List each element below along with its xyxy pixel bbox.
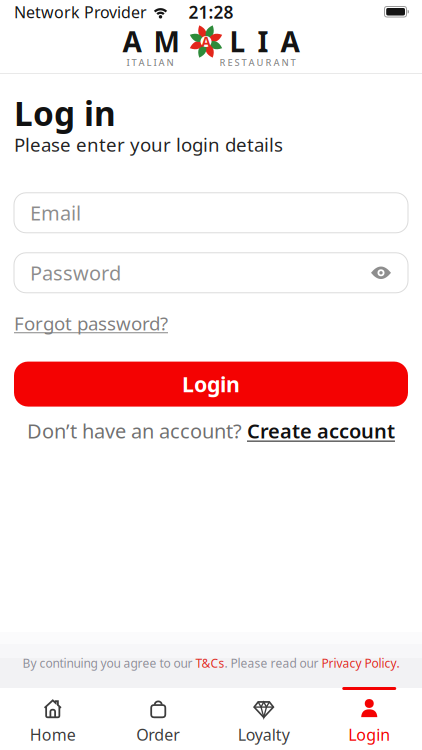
staticText: I — [257, 23, 268, 60]
staticText: Forgot password? — [14, 311, 168, 336]
button[interactable]: Forgot password? — [14, 311, 168, 336]
staticText: Log in — [14, 91, 116, 135]
button[interactable]: Loyalty — [211, 694, 316, 748]
button[interactable]: Login — [14, 362, 408, 407]
staticText: Login — [182, 370, 240, 398]
staticText: Privacy Policy. — [321, 655, 399, 671]
staticText: Don’t have an account? — [27, 418, 242, 444]
staticText: Home — [30, 724, 76, 745]
button[interactable]: Login — [316, 694, 422, 748]
staticText: By continuing you agree to our — [22, 655, 195, 671]
staticText: Please enter your login details — [14, 132, 283, 157]
staticText: T&Cs — [195, 655, 224, 671]
staticText: 21:28 — [188, 0, 233, 23]
staticText: A — [122, 23, 141, 60]
staticText: I T A L I A N — [126, 56, 173, 69]
staticText: Login — [348, 724, 390, 745]
staticText: M — [153, 23, 179, 60]
staticText: Email — [30, 199, 81, 226]
button[interactable]: Home — [0, 694, 105, 748]
staticText: R E S T A U R A N T — [219, 56, 295, 69]
staticText: A — [201, 33, 210, 50]
button[interactable]: Password — [14, 253, 408, 293]
staticText: Network Provider — [14, 1, 147, 23]
staticText: Create account — [247, 418, 395, 444]
staticText: A — [280, 23, 299, 60]
button[interactable]: Email — [14, 193, 408, 233]
button[interactable]: T&Cs — [195, 655, 224, 671]
button[interactable]: Privacy Policy. — [321, 655, 399, 671]
button[interactable]: Create account — [247, 418, 395, 444]
button[interactable]: Order — [105, 694, 211, 748]
staticText: Password — [30, 259, 121, 286]
staticText: . Please read our — [224, 655, 321, 671]
staticText: L — [229, 23, 245, 60]
staticText: Order — [136, 724, 180, 745]
staticText: Loyalty — [238, 724, 290, 745]
